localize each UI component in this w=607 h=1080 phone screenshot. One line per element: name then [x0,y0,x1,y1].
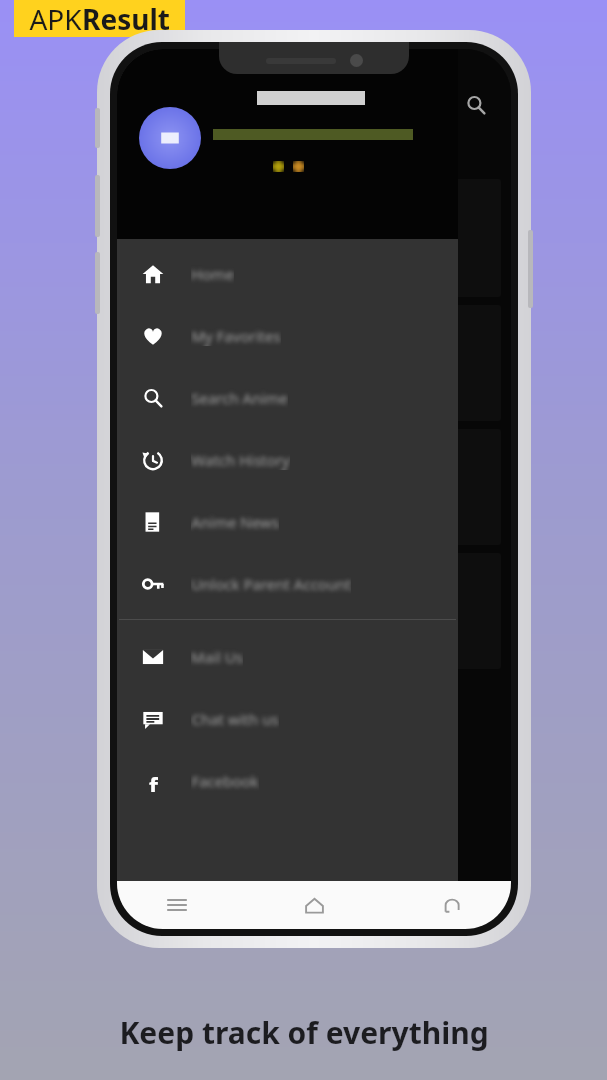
staticText: LEGEND OF THE [141,563,234,579]
staticText: Chat with us [191,709,279,729]
button[interactable]: ANIME TITLE (SUB) [131,179,501,297]
button[interactable]: Logout [117,887,458,923]
other: Logout [310,895,331,916]
staticText: Anime News [191,512,279,532]
staticText: APK [29,0,82,37]
button[interactable]: Search [459,88,493,122]
staticText: Watch History [191,450,290,470]
staticText: Home [191,264,234,284]
staticText: f [149,770,158,792]
staticText: Result [82,0,170,37]
staticText: MY [133,131,154,149]
button[interactable]: f [117,750,458,812]
button[interactable]: Profile photo [139,107,201,169]
staticText: FAVORITES [133,149,203,167]
staticText: Keep track of everything [119,1012,489,1053]
button[interactable]: Watch History [117,429,458,491]
staticText: Facebook [191,771,259,791]
button[interactable]: Recents [157,885,197,925]
staticText: LEGEND OF THE [141,439,234,455]
staticText: My Favorites [191,326,281,346]
button[interactable]: LEGEND OF THE [131,429,501,545]
button[interactable]: Search Anime [117,367,458,429]
button[interactable]: My Favorites [117,305,458,367]
button[interactable]: Home [294,885,334,925]
staticText: Search Anime [191,388,288,408]
button[interactable]: WATCH THEN: [131,305,501,421]
staticText: Unlock Parent Account [191,574,351,594]
button[interactable]: Unlock Parent Account [117,553,458,615]
button[interactable]: Anime News [117,491,458,553]
button[interactable]: Chat with us [117,688,458,750]
button[interactable]: LEGEND OF THE [131,553,501,669]
staticText: Mail Us [191,647,243,667]
staticText: WATCH THEN: [141,315,223,331]
button[interactable]: Home [117,243,458,305]
button[interactable]: Back [431,885,471,925]
button[interactable]: Mail Us [117,626,458,688]
